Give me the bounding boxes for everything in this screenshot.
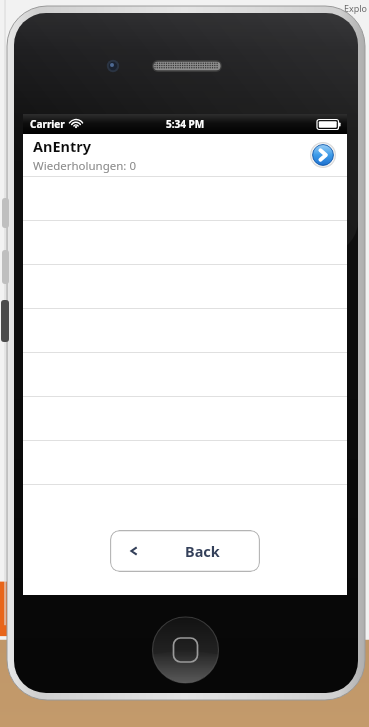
button[interactable]: Details bbox=[310, 142, 336, 168]
staticText: AnEntry bbox=[33, 136, 92, 156]
staticText: s bbox=[344, 17, 349, 29]
button[interactable]: Back bbox=[110, 530, 260, 572]
staticText: Carrier bbox=[30, 117, 65, 131]
staticText: 5:34 PM bbox=[166, 117, 205, 131]
staticText: Explo bbox=[344, 2, 368, 14]
staticText: Wiederholungen: 0 bbox=[33, 158, 137, 174]
staticText: Back bbox=[185, 541, 220, 561]
button[interactable]: AnEntry bbox=[23, 134, 347, 176]
